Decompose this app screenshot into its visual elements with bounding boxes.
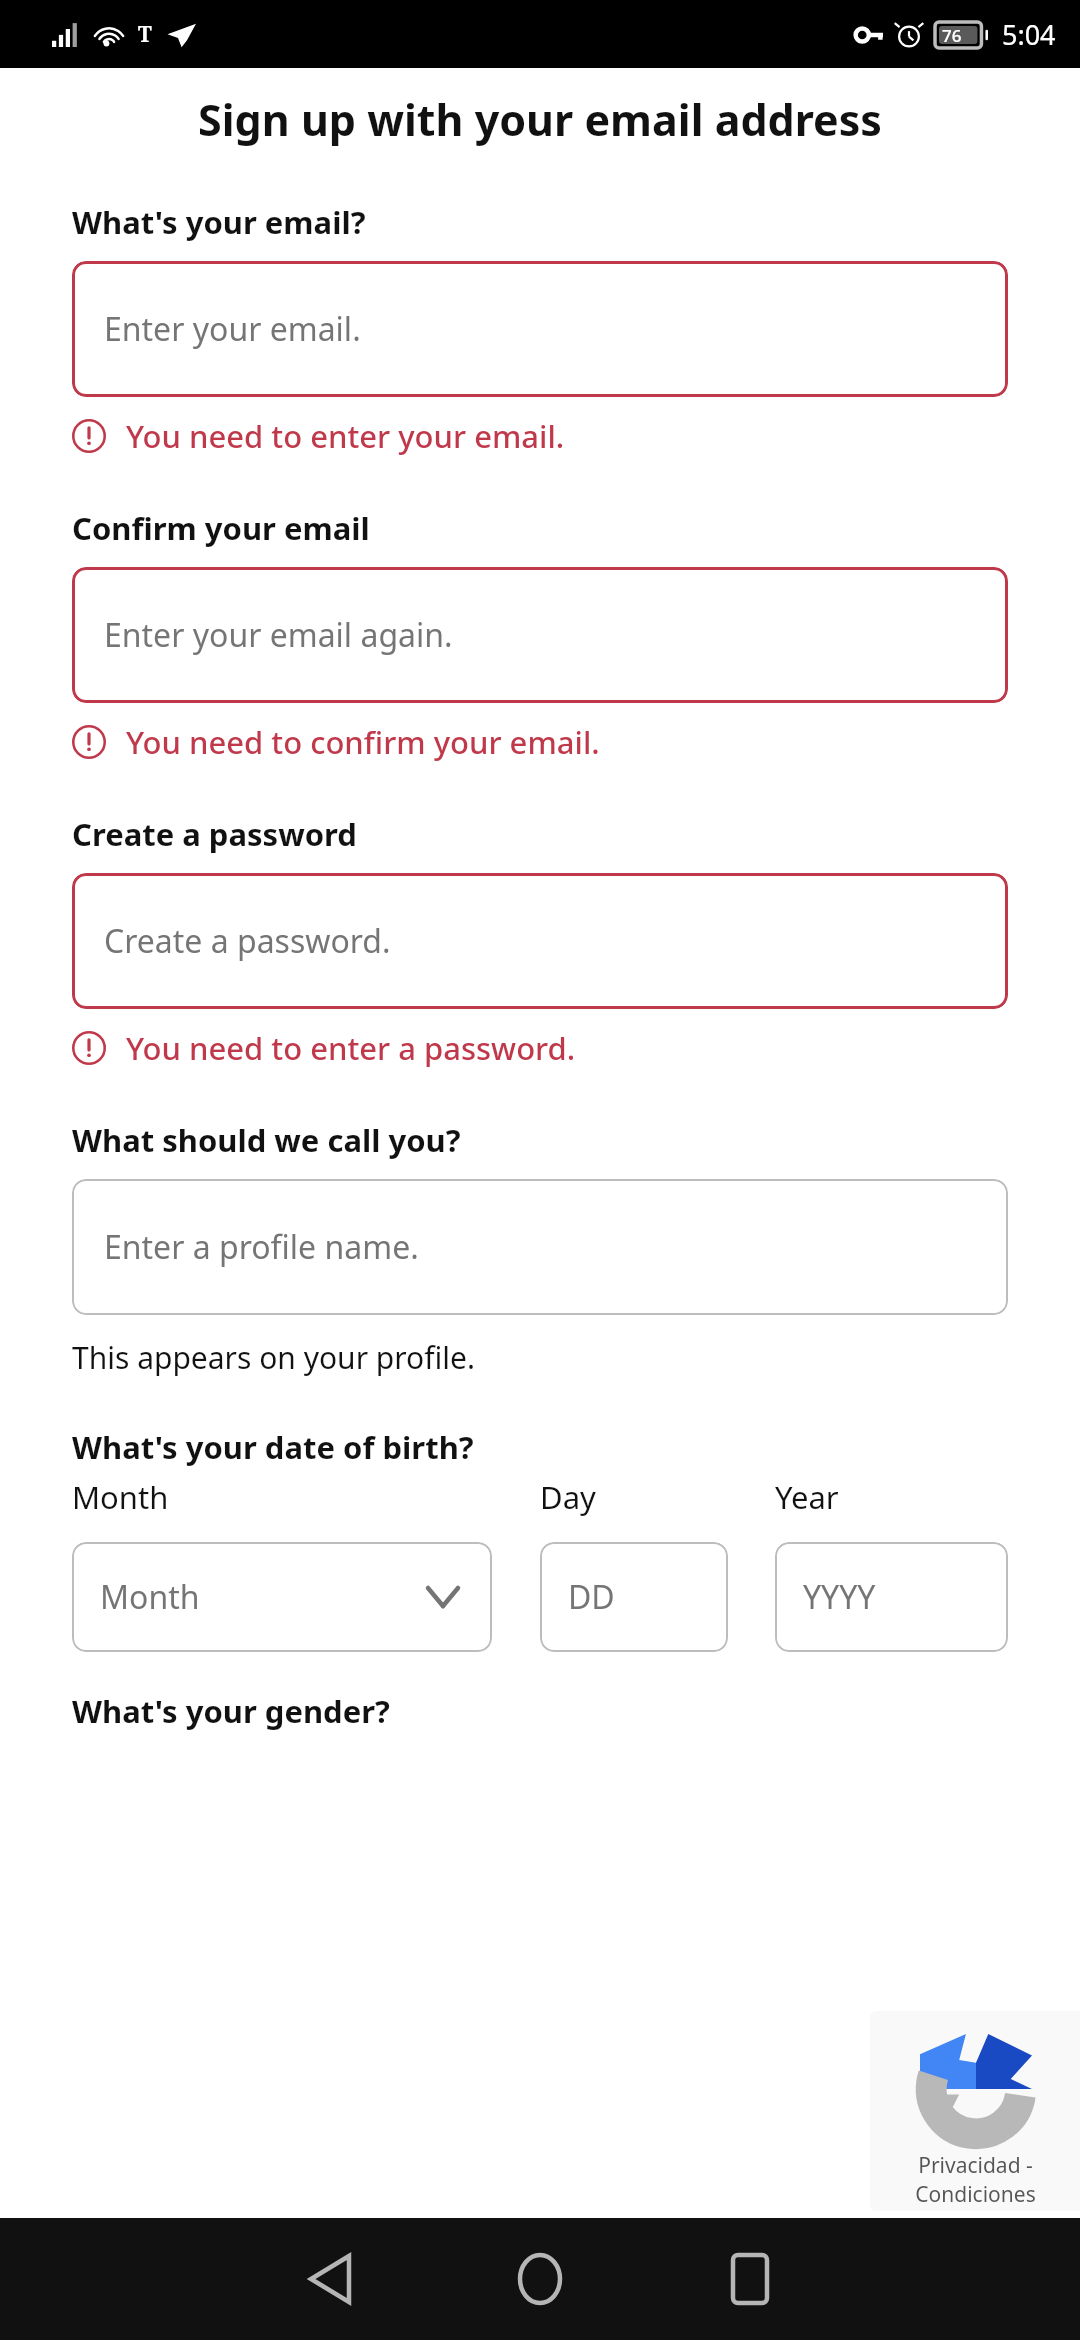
staticText: Confirm your email [72,507,370,549]
staticText: You need to confirm your email. [126,721,600,763]
staticText: DD [568,1575,615,1619]
button[interactable]: Recent apps [675,2218,825,2340]
staticText: What's your date of birth? [72,1426,474,1468]
staticText: Enter your email again. [104,613,453,657]
button[interactable]: Enter a profile name. [72,1179,1008,1315]
button[interactable]: Enter your email. [72,261,1008,397]
button[interactable]: YYYY [775,1542,1008,1652]
staticText: Enter a profile name. [104,1225,419,1269]
staticText: You need to enter a password. [126,1027,576,1069]
staticText: YYYY [803,1575,876,1619]
staticText: Sign up with your email address [24,90,1056,149]
staticText: You need to enter your email. [126,415,565,457]
staticText: Day [540,1476,596,1518]
staticText: Enter your email. [104,307,361,351]
button[interactable]: Month [72,1542,492,1652]
staticText: Month [72,1476,169,1518]
staticText: 5:04 [1002,16,1056,53]
button[interactable]: Back [255,2218,405,2340]
staticText: T [138,20,152,49]
button[interactable]: Home [465,2218,615,2340]
staticText: What's your gender? [72,1690,390,1732]
button[interactable]: Create a password. [72,873,1008,1009]
staticText: This appears on your profile. [72,1337,475,1378]
staticText: Privacidad - [918,2151,1033,2180]
staticText: Create a password. [104,919,391,963]
staticText: Month [100,1575,200,1619]
staticText: Year [775,1476,839,1518]
staticText: What should we call you? [72,1119,461,1161]
button[interactable]: Enter your email again. [72,567,1008,703]
button[interactable]: DD [540,1542,728,1652]
staticText: What's your email? [72,201,366,243]
staticText: Create a password [72,813,357,855]
button[interactable]: reCAPTCHA privacy and terms [870,2011,1080,2211]
staticText: 76 [942,24,962,47]
staticText: Condiciones [915,2180,1036,2209]
